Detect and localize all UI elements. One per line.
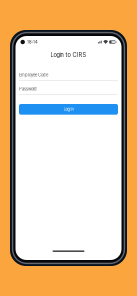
- button[interactable]: Login: [19, 104, 118, 115]
- staticText: Login: [63, 107, 73, 112]
- staticText: Employee Code: [19, 72, 48, 77]
- staticText: 18:14: [27, 39, 38, 44]
- staticText: Login to CIRS: [50, 52, 86, 58]
- staticText: Password: [19, 86, 37, 91]
